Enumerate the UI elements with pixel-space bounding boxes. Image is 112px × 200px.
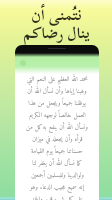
staticText: على كل شيء قدير والحمد [31,194,83,200]
staticText: حسناتنا جميعاً يوم القيامة [31,146,83,158]
staticText: يوفقنا جميعاً ويجعل من هذا [28,98,86,110]
staticText: نتُمنى أن [31,0,82,31]
staticText: ولوالدينا وللمسلمين أجمعين [31,170,84,182]
staticText: إنه سميع مجيب الدعاء وهو [30,182,84,194]
staticText: نحمد الله العظيم على النعم التي [27,74,88,86]
staticText: ونسأل الله أن ينفع به كل من [26,122,88,134]
staticText: كما نسأل الله أن يغفر لنا [32,158,82,170]
staticText: قرأه وأن يجعله في ميزان [32,134,83,146]
staticText: ينال رضاكم [23,17,90,49]
staticText: وهبنا إياها وأن نسأل الله أن [27,86,87,98]
staticText: العمل خالصاً لوجهه الكريم [29,110,86,122]
